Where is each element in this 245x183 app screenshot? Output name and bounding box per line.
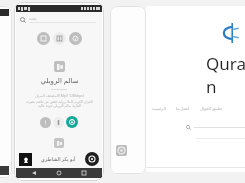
button[interactable]: Pages xyxy=(53,32,66,45)
button[interactable]: Share xyxy=(40,117,51,128)
button[interactable]: Home xyxy=(52,168,66,178)
button[interactable]: أبو بكر الشاطري xyxy=(19,152,99,166)
staticText: القرآن الكريم كاملا برواية حفص عن عاصم ب… xyxy=(26,99,93,108)
button[interactable]: Bookmarks xyxy=(69,32,82,45)
button[interactable]: Play xyxy=(85,152,99,166)
staticText: تطبيق الجوال xyxy=(200,106,223,111)
staticText: أبو بكر الشاطري xyxy=(41,156,76,163)
staticText: المصحف المرتل (Mp3 128kbps) xyxy=(35,93,84,98)
button[interactable]: Download xyxy=(66,116,78,128)
button[interactable]: Back xyxy=(27,168,41,178)
button[interactable]: App icon xyxy=(116,145,127,156)
staticText: بحث xyxy=(29,16,37,21)
button[interactable]: تطبيق الجوال xyxy=(200,106,223,111)
staticText: Quran xyxy=(206,52,245,98)
button[interactable]: بحث xyxy=(20,16,96,23)
button[interactable]: سالم الروبلي xyxy=(23,61,95,108)
button[interactable]: Quran logo xyxy=(219,22,241,44)
staticText: اتصل بنا xyxy=(176,106,190,111)
button[interactable]: الرئيسية xyxy=(152,106,166,111)
button[interactable]: اتصل بنا xyxy=(176,106,190,111)
staticText: الرئيسية xyxy=(152,106,166,111)
button[interactable] xyxy=(186,125,245,130)
button[interactable]: List xyxy=(37,32,50,45)
button[interactable]: Recents xyxy=(77,168,91,178)
staticText: سالم الروبلي xyxy=(40,76,79,86)
button[interactable]: Info xyxy=(53,117,64,128)
